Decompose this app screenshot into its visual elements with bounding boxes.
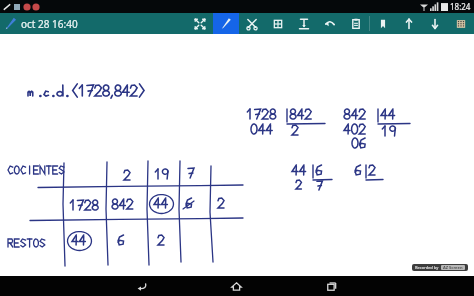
button[interactable]: Home	[189, 276, 284, 296]
staticText: oct 28 16:40	[21, 17, 78, 31]
button[interactable]: Pen	[213, 13, 239, 34]
button[interactable]: Bookmark	[370, 13, 396, 34]
button[interactable]: Back	[94, 276, 189, 296]
button[interactable]: App	[448, 13, 474, 34]
staticText: Recorded by	[415, 265, 439, 270]
button[interactable]: Page down	[422, 13, 448, 34]
staticText: 18:24	[450, 1, 471, 12]
button[interactable]: Undo	[317, 13, 343, 34]
button[interactable]: Page up	[396, 13, 422, 34]
button[interactable]: Insert space	[291, 13, 317, 34]
button[interactable]: Cut	[239, 13, 265, 34]
button[interactable]: Move	[187, 13, 213, 34]
button[interactable]: Grid	[265, 13, 291, 34]
button[interactable]: Clipboard	[343, 13, 369, 34]
button[interactable]: Recent apps	[284, 276, 379, 296]
staticText: AZ Screen	[443, 265, 463, 270]
